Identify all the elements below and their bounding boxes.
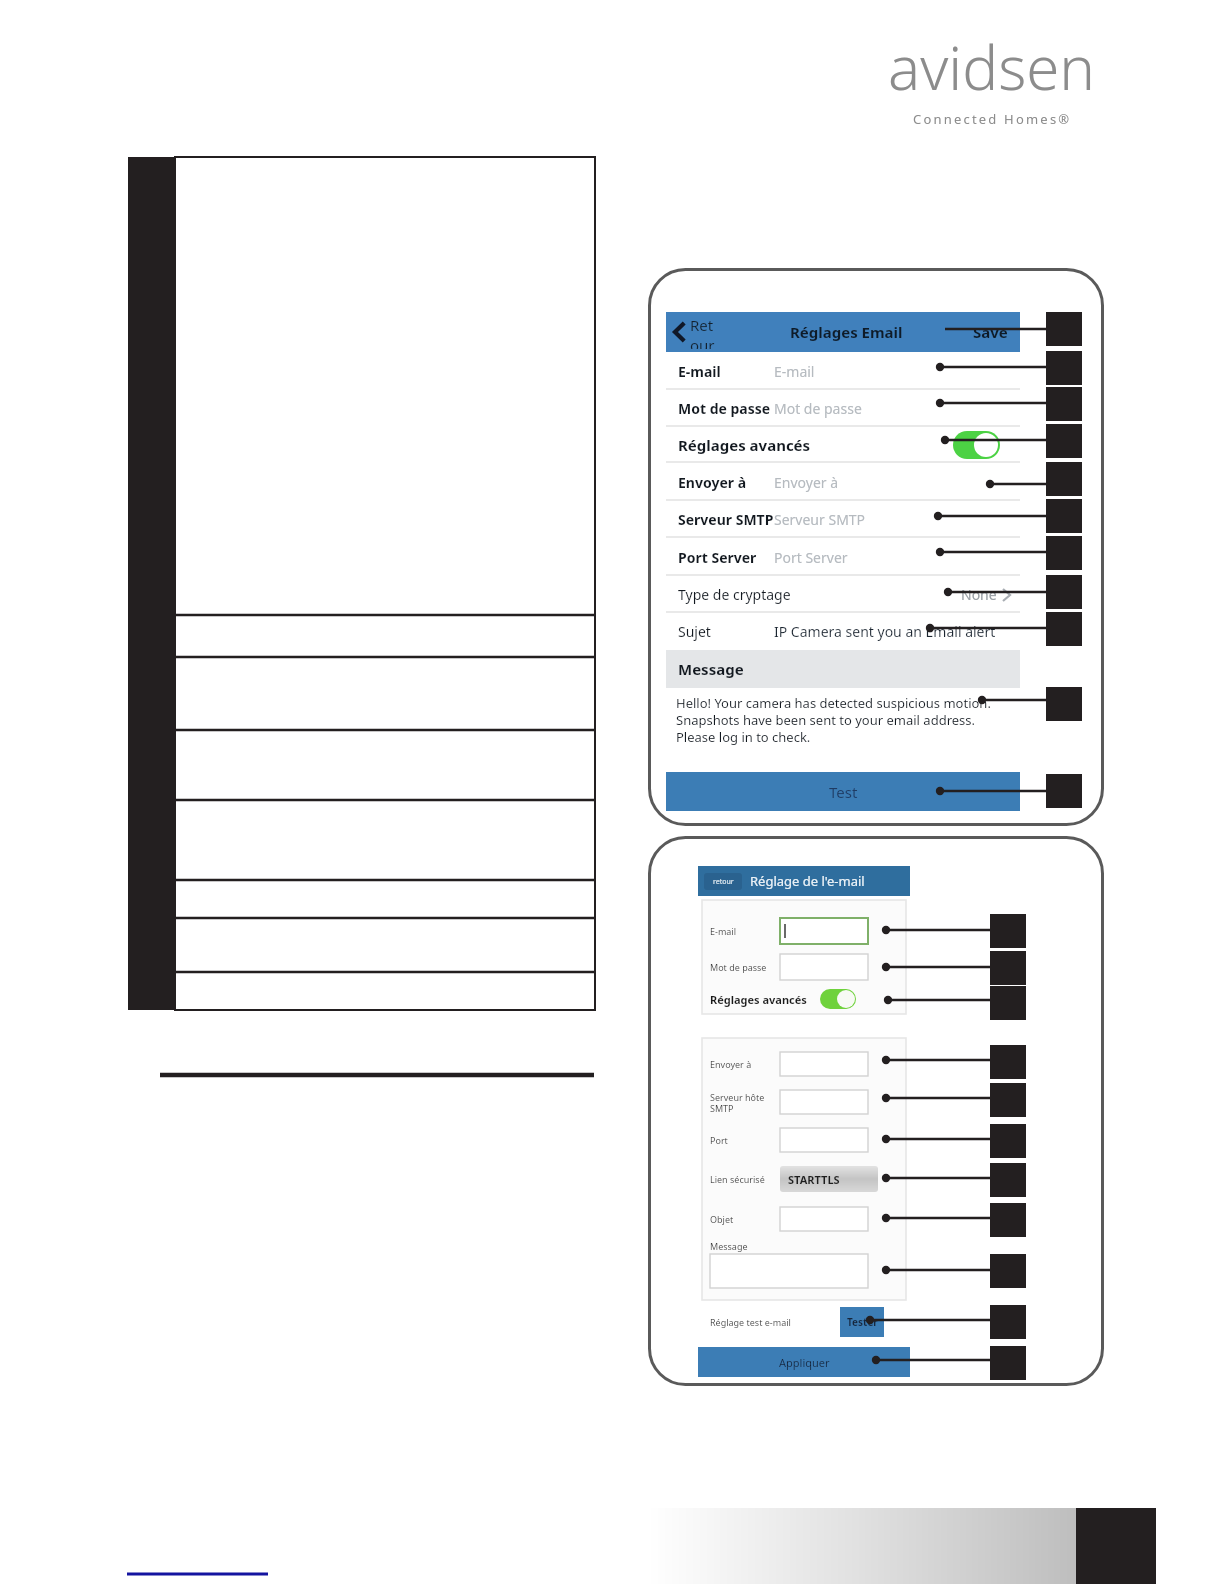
button[interactable]: retour	[698, 866, 910, 896]
staticText: Retour	[690, 315, 720, 349]
button[interactable]: Retour	[666, 312, 1020, 352]
staticText: Serveur SMTP	[774, 510, 866, 529]
button[interactable]: Appliquer	[698, 1347, 910, 1377]
button[interactable]: E-mail	[710, 914, 868, 948]
button[interactable]: Envoyer à	[666, 463, 1020, 501]
staticText: Serveur SMTP	[678, 510, 774, 529]
button[interactable]	[710, 1254, 868, 1288]
button[interactable]: Port Server	[666, 538, 1020, 576]
button[interactable]: Type de cryptage	[666, 576, 1020, 613]
staticText: Message	[678, 659, 744, 679]
staticText: Connected Homes®	[913, 110, 1072, 128]
staticText: Réglage de l'e-mail	[750, 872, 865, 890]
button[interactable]: Message	[666, 650, 1020, 688]
staticText: Lien sécurisé	[710, 1173, 765, 1185]
button[interactable]: retour	[704, 873, 742, 890]
button[interactable]: Réglages avancés toggle	[820, 989, 856, 1009]
staticText: Type de cryptage	[678, 585, 791, 604]
button[interactable]: Test	[666, 772, 1020, 811]
button[interactable]: Envoyer à	[710, 1048, 868, 1080]
button[interactable]: E-mail	[666, 352, 1020, 390]
staticText: Port	[710, 1134, 728, 1146]
button[interactable]: Retour	[674, 315, 720, 349]
button[interactable]: Hello! Your camera has detected suspicio…	[666, 688, 1020, 760]
button[interactable]: Testér	[840, 1307, 884, 1337]
staticText: Port Server	[774, 548, 848, 567]
staticText: avidsen	[888, 26, 1096, 108]
button[interactable]: Serveur SMTP	[666, 501, 1020, 538]
staticText: Réglage test e-mail	[710, 1316, 791, 1328]
staticText: Envoyer à	[710, 1058, 752, 1070]
staticText: Mot de passe	[774, 399, 862, 418]
staticText: Save	[973, 322, 1008, 342]
button[interactable]: Save	[973, 322, 1008, 342]
staticText: None	[961, 585, 997, 604]
staticText: Sujet	[678, 622, 711, 641]
staticText: Envoyer à	[774, 473, 839, 492]
staticText: E-mail	[710, 925, 737, 937]
button[interactable]: Serveur hôte SMTP	[710, 1086, 868, 1118]
staticText: E-mail	[678, 362, 721, 381]
staticText: retour	[713, 877, 734, 887]
staticText: Message	[710, 1240, 748, 1252]
staticText: Test	[829, 782, 858, 802]
staticText: Serveur hôte SMTP	[710, 1091, 765, 1114]
staticText: STARTTLS	[788, 1172, 840, 1187]
staticText: Testér	[847, 1315, 878, 1329]
button[interactable]: Réglages avancés toggle	[953, 431, 1000, 459]
staticText: Objet	[710, 1213, 734, 1225]
button[interactable]: Mot de passe	[710, 950, 868, 984]
button[interactable]: STARTTLS	[780, 1166, 878, 1192]
button[interactable]: Réglages avancés	[710, 988, 898, 1010]
staticText: Mot de passe	[710, 961, 767, 973]
button[interactable]: Réglages avancés	[666, 427, 1020, 463]
staticText: Réglages avancés	[710, 992, 807, 1007]
staticText: Appliquer	[779, 1355, 830, 1370]
staticText: Hello! Your camera has detected suspicio…	[676, 694, 1014, 746]
staticText: Mot de passe	[678, 399, 771, 418]
staticText: IP Camera sent you an Email alert	[774, 622, 996, 641]
button[interactable]: Objet	[710, 1203, 868, 1235]
button[interactable]: Lien sécurisé	[710, 1164, 898, 1194]
button[interactable]: Sujet	[666, 613, 1020, 650]
staticText: Envoyer à	[678, 473, 747, 492]
staticText: Réglages Email	[790, 322, 903, 342]
staticText: E-mail	[774, 362, 815, 381]
staticText: Port Server	[678, 548, 757, 567]
staticText: Réglages avancés	[678, 435, 811, 455]
button[interactable]: Mot de passe	[666, 390, 1020, 427]
button[interactable]: Port	[710, 1124, 868, 1156]
